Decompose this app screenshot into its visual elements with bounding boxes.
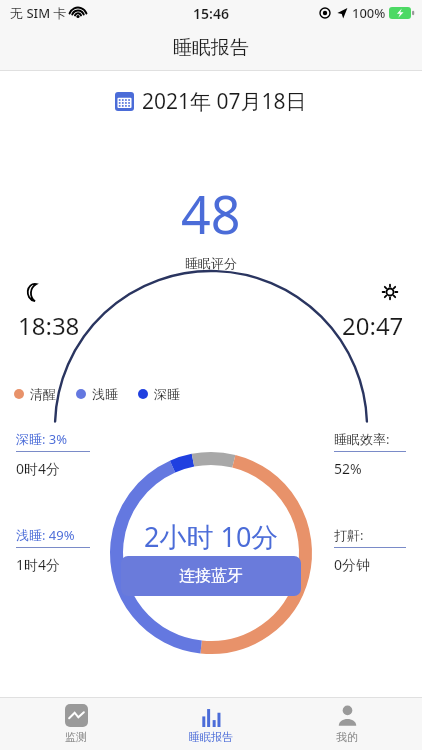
button[interactable]: 浅睡: 49% — [16, 526, 90, 574]
staticText: 2小时 10分 — [144, 518, 279, 555]
button[interactable]: 2021年 07月18日 — [0, 87, 422, 116]
button[interactable]: 我的 — [287, 698, 407, 750]
button[interactable]: 清醒 — [14, 386, 56, 402]
staticText: 我的 — [336, 730, 358, 744]
staticText: 无 SIM 卡 — [10, 4, 67, 22]
staticText: 打鼾: — [334, 526, 364, 544]
staticText: 1时4分 — [16, 555, 61, 574]
button[interactable]: 深睡: 3% — [16, 430, 90, 478]
other: 监测 — [65, 704, 88, 727]
staticText: 2021年 07月18日 — [142, 87, 307, 116]
staticText: 0分钟 — [334, 555, 371, 574]
staticText: 监测 — [65, 730, 87, 744]
staticText: 睡眠效率: — [334, 430, 390, 448]
button[interactable]: 深睡 — [138, 386, 180, 402]
staticText: 48 — [181, 178, 241, 249]
button[interactable]: 连接蓝牙 — [121, 556, 301, 596]
other: 我的 — [336, 704, 359, 727]
staticText: 0时4分 — [16, 459, 61, 478]
staticText: 清醒 — [30, 386, 56, 402]
staticText: 浅睡: 49% — [16, 526, 75, 544]
button[interactable]: 睡眠报告 — [151, 698, 271, 750]
staticText: 20:47 — [342, 309, 404, 342]
staticText: 连接蓝牙 — [179, 566, 243, 586]
staticText: 深睡 — [154, 386, 180, 402]
staticText: 睡眠报告 — [189, 730, 233, 744]
staticText: 52% — [334, 459, 362, 478]
staticText: 浅睡 — [92, 386, 118, 402]
staticText: 深睡: 3% — [16, 430, 68, 448]
other: 睡眠报告 — [200, 704, 223, 727]
staticText: 睡眠评分 — [185, 255, 237, 271]
staticText: 18:38 — [18, 309, 80, 342]
button[interactable]: 睡眠效率: — [334, 430, 406, 478]
staticText: 15:46 — [193, 4, 229, 23]
staticText: 睡眠报告 — [173, 36, 249, 60]
button[interactable]: 监测 — [16, 698, 136, 750]
button[interactable]: 浅睡 — [76, 386, 118, 402]
staticText: 100% — [352, 4, 386, 22]
button[interactable]: 打鼾: — [334, 526, 406, 574]
